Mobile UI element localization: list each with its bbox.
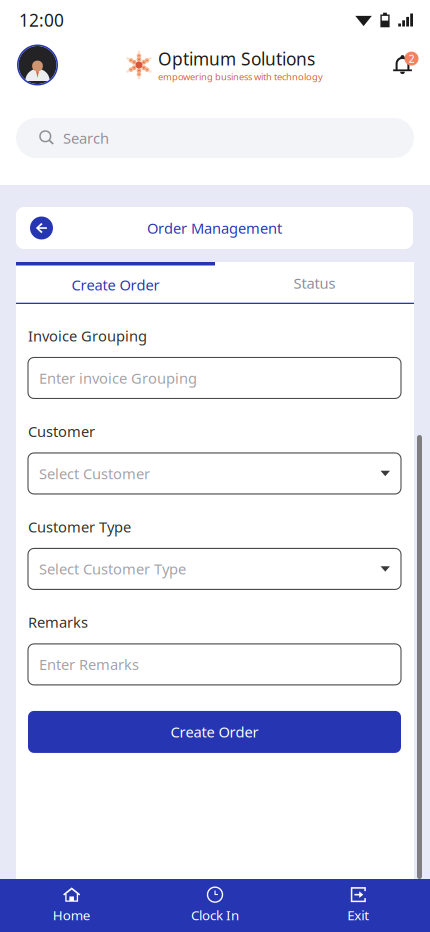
button[interactable]: Create Order	[28, 711, 401, 753]
button[interactable]: Enter invoice Grouping	[28, 357, 401, 398]
button[interactable]: Select Customer Type	[28, 548, 401, 589]
button[interactable]: Search	[16, 118, 414, 158]
staticText: Remarks	[28, 612, 88, 632]
staticText: Customer Type	[28, 517, 131, 536]
button[interactable]: Notifications	[389, 54, 416, 76]
staticText: 2	[408, 51, 414, 66]
staticText: Clock In	[191, 906, 239, 924]
button[interactable]: Enter Remarks	[28, 644, 401, 685]
staticText: Invoice Grouping	[28, 326, 147, 345]
staticText: Select Customer	[39, 464, 150, 483]
staticText: Enter invoice Grouping	[39, 368, 197, 388]
staticText: Select Customer Type	[39, 559, 186, 579]
button[interactable]: Status	[215, 262, 414, 304]
staticText: Optimum Solutions	[158, 47, 315, 70]
button[interactable]: Create Order	[16, 262, 215, 304]
button[interactable]: Clock In	[143, 879, 287, 932]
staticText: Home	[53, 906, 91, 924]
button[interactable]: Select Customer	[28, 453, 401, 494]
staticText: Search	[63, 128, 109, 148]
staticText: Create Order	[170, 722, 258, 742]
staticText: Status	[293, 273, 335, 293]
button[interactable]: Order Management	[16, 207, 413, 249]
staticText: Order Management	[147, 218, 282, 238]
staticText: 12:00	[19, 8, 64, 31]
staticText: Enter Remarks	[39, 655, 139, 674]
button[interactable]: Home	[0, 879, 143, 932]
staticText: Exit	[347, 906, 369, 924]
button[interactable]: Profile	[17, 44, 58, 85]
button[interactable]: Exit	[287, 879, 430, 932]
staticText: Create Order	[71, 275, 159, 294]
staticText: Customer	[28, 421, 95, 441]
staticText: empowering business with technology	[158, 70, 323, 83]
